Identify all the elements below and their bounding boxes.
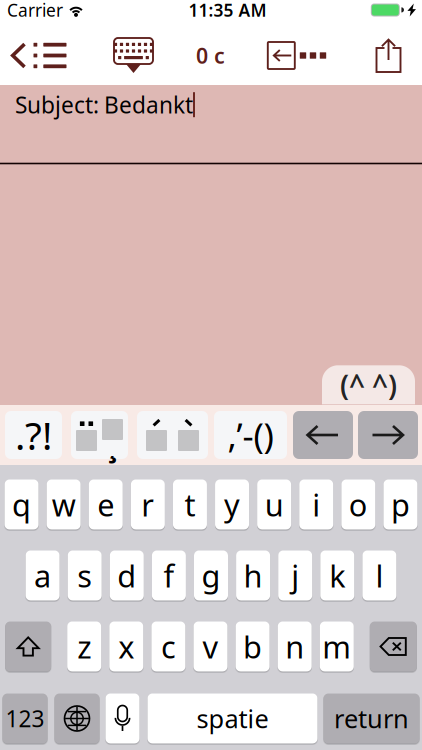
button[interactable]: (^ ^) — [322, 365, 415, 404]
button[interactable]: .?! — [5, 411, 62, 459]
staticText: y — [224, 484, 240, 525]
staticText: d — [117, 555, 136, 596]
button[interactable]: return — [323, 693, 419, 743]
button[interactable]: Shift — [5, 621, 51, 671]
button[interactable]: r — [131, 479, 165, 529]
button[interactable]: c — [151, 621, 185, 671]
button[interactable]: 0 c — [190, 23, 231, 88]
button[interactable]: Dictate — [105, 693, 139, 743]
button[interactable]: k — [320, 550, 354, 600]
button[interactable]: ¸ — [71, 411, 128, 459]
staticText: 11:35 AM — [188, 0, 266, 21]
staticText: g — [201, 555, 220, 596]
staticText: c — [161, 626, 176, 667]
button[interactable]: j — [278, 550, 312, 600]
button[interactable]: s — [68, 550, 102, 600]
button[interactable]: Hide keyboard — [77, 23, 190, 88]
button[interactable]: v — [193, 621, 227, 671]
staticText: z — [77, 626, 91, 667]
staticText: h — [244, 555, 263, 596]
staticText: j — [291, 555, 299, 596]
button[interactable]: g — [194, 550, 228, 600]
staticText: 0 c — [196, 41, 225, 70]
button[interactable]: t — [173, 479, 207, 529]
staticText: e — [97, 484, 114, 525]
staticText: 123 — [5, 703, 44, 733]
staticText: .?! — [15, 409, 52, 461]
staticText: b — [243, 626, 262, 667]
button[interactable]: z — [67, 621, 101, 671]
button[interactable]: i — [299, 479, 333, 529]
button[interactable]: u — [257, 479, 291, 529]
button[interactable]: Next keyboard — [54, 693, 99, 743]
staticText: ¸ — [108, 424, 116, 465]
staticText: t — [184, 484, 195, 525]
button[interactable]: m — [320, 621, 354, 671]
staticText: l — [375, 555, 383, 596]
button[interactable] — [137, 411, 208, 459]
button[interactable]: Share — [363, 23, 414, 88]
button[interactable] — [293, 411, 353, 459]
staticText: s — [77, 555, 92, 596]
staticText: Bedankt — [104, 90, 193, 120]
staticText: v — [202, 626, 218, 667]
button[interactable] — [358, 411, 418, 459]
button[interactable]: o — [341, 479, 375, 529]
staticText: p — [391, 484, 410, 525]
button[interactable]: q — [5, 479, 39, 529]
staticText: (^ ^) — [340, 366, 397, 403]
button[interactable]: Insert recipient — [231, 23, 363, 88]
staticText: Subject: — [15, 90, 99, 120]
staticText: m — [322, 626, 351, 667]
button[interactable]: n — [278, 621, 312, 671]
staticText: return — [334, 702, 409, 735]
button[interactable]: e — [89, 479, 123, 529]
button[interactable]: 123 — [2, 693, 47, 743]
staticText: ,’-() — [227, 412, 273, 458]
button[interactable]: spatie — [147, 693, 317, 743]
button[interactable]: Delete — [370, 621, 417, 671]
button[interactable]: a — [26, 550, 60, 600]
button[interactable]: x — [109, 621, 143, 671]
button[interactable]: p — [383, 479, 417, 529]
button[interactable]: w — [47, 479, 81, 529]
staticText: o — [349, 484, 368, 525]
staticText: f — [163, 555, 174, 596]
staticText: Carrier — [7, 0, 63, 21]
staticText: k — [329, 555, 345, 596]
staticText: spatie — [196, 702, 268, 735]
button[interactable]: b — [236, 621, 270, 671]
staticText: u — [265, 484, 284, 525]
button[interactable]: l — [362, 550, 396, 600]
staticText: q — [12, 484, 31, 525]
staticText: r — [141, 484, 154, 525]
staticText: a — [34, 555, 51, 596]
button[interactable]: Back to message list — [0, 23, 77, 88]
staticText: n — [285, 626, 304, 667]
button[interactable]: h — [236, 550, 270, 600]
staticText: w — [52, 484, 76, 525]
button[interactable]: f — [152, 550, 186, 600]
staticText: i — [312, 484, 320, 525]
staticText: x — [118, 626, 134, 667]
button[interactable]: d — [110, 550, 144, 600]
button[interactable]: y — [215, 479, 249, 529]
button[interactable]: ,’-() — [214, 411, 287, 459]
